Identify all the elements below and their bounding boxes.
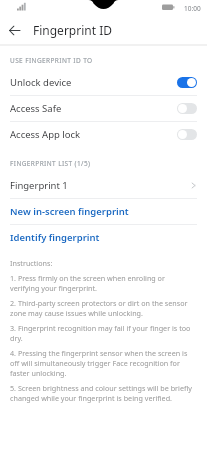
button[interactable]: Unlock device [0, 70, 207, 95]
staticText: 4. Pressing the fingerprint sensor when … [10, 348, 195, 378]
button[interactable]: Fingerprint 1 [0, 173, 207, 198]
staticText: 10:00 [184, 4, 201, 13]
staticText: FINGERPRINT LIST (1/5) [10, 159, 91, 168]
staticText: USE FINGERPRINT ID TO [10, 56, 93, 65]
staticText: 3. Fingerprint recognition may fail if y… [10, 323, 195, 343]
staticText: Instructions: [10, 258, 53, 268]
staticText: Unlock device [10, 76, 72, 89]
button[interactable]: Back [0, 16, 28, 44]
staticText: 5. Screen brightness and colour settings… [10, 383, 195, 403]
button[interactable]: Access App lock [0, 122, 207, 147]
staticText: Fingerprint 1 [10, 179, 68, 192]
staticText: Fingerprint ID [33, 22, 112, 38]
button[interactable]: Access Safe [0, 96, 207, 121]
staticText: 1. Press firmly on the screen when enrol… [10, 273, 195, 293]
staticText: 2. Third-party screen protectors or dirt… [10, 298, 195, 318]
button[interactable]: New in-screen fingerprint [0, 199, 207, 224]
staticText: Access App lock [10, 128, 81, 141]
button[interactable]: Identify fingerprint [0, 225, 207, 250]
staticText: Identify fingerprint [10, 231, 100, 244]
staticText: Access Safe [10, 102, 62, 115]
staticText: New in-screen fingerprint [10, 205, 129, 218]
